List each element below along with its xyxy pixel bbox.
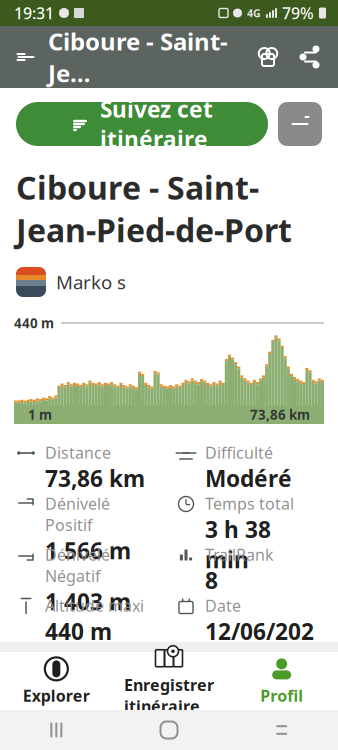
button[interactable]: Modifier [278,102,322,146]
staticText: 4G [247,6,261,20]
staticText: Difficulté [205,442,273,463]
button[interactable]: Explorer [0,648,113,714]
staticText: Ciboure - Saint-Je… [48,25,228,89]
staticText: Type d'itinéraire [205,646,286,688]
staticText: 1 403 m [45,586,131,617]
staticText: Ciboure - Saint-Jean-Pied-de-Port [16,166,292,251]
staticText: Marko s [56,270,126,294]
staticText: Aller simple [205,688,280,749]
staticText: Enregistrer itinéraire [124,674,214,717]
button[interactable]: Retour [4,33,48,81]
button[interactable]: Retour [225,710,338,750]
staticText: Modéré [205,463,292,493]
button[interactable]: Partager [288,33,332,81]
staticText: 1 566 m [45,535,131,566]
staticText: 19:31 [14,2,54,24]
staticText: Profil [260,685,303,706]
button[interactable]: Suivez cet itinéraire [16,102,268,146]
button[interactable]: Applications récentes [0,710,113,750]
staticText: Distance [45,442,111,463]
staticText: Temps total [205,493,294,514]
staticText: 73,86 km [250,406,310,423]
staticText: 440 m [45,616,112,646]
staticText: Explorer [23,685,90,706]
staticText: 440 m [14,314,54,332]
staticText: 12/06/2021 [205,616,314,676]
button[interactable]: Ajouter aux favoris [248,33,288,81]
staticText: 8 [205,565,218,595]
button[interactable]: Profil [225,648,338,714]
staticText: 73,86 km [45,463,145,493]
staticText: Altitude maxi [45,595,144,616]
staticText: TrailRank [205,544,274,565]
button[interactable]: Enregistrer itinéraire [113,637,225,725]
staticText: 1 m [28,406,52,423]
button[interactable]: Marko s [0,251,338,301]
staticText: Dénivelé Négatif [45,544,110,586]
staticText: Suivez cet itinéraire [100,94,213,154]
staticText: Altitude mini [45,646,141,667]
button[interactable]: Accueil [113,710,225,750]
staticText: 3 h 38 min [205,514,271,574]
staticText: Dénivelé Positif [45,493,110,535]
staticText: 1 m [45,667,86,697]
staticText: 79% [282,2,314,24]
staticText: Date [205,595,241,616]
